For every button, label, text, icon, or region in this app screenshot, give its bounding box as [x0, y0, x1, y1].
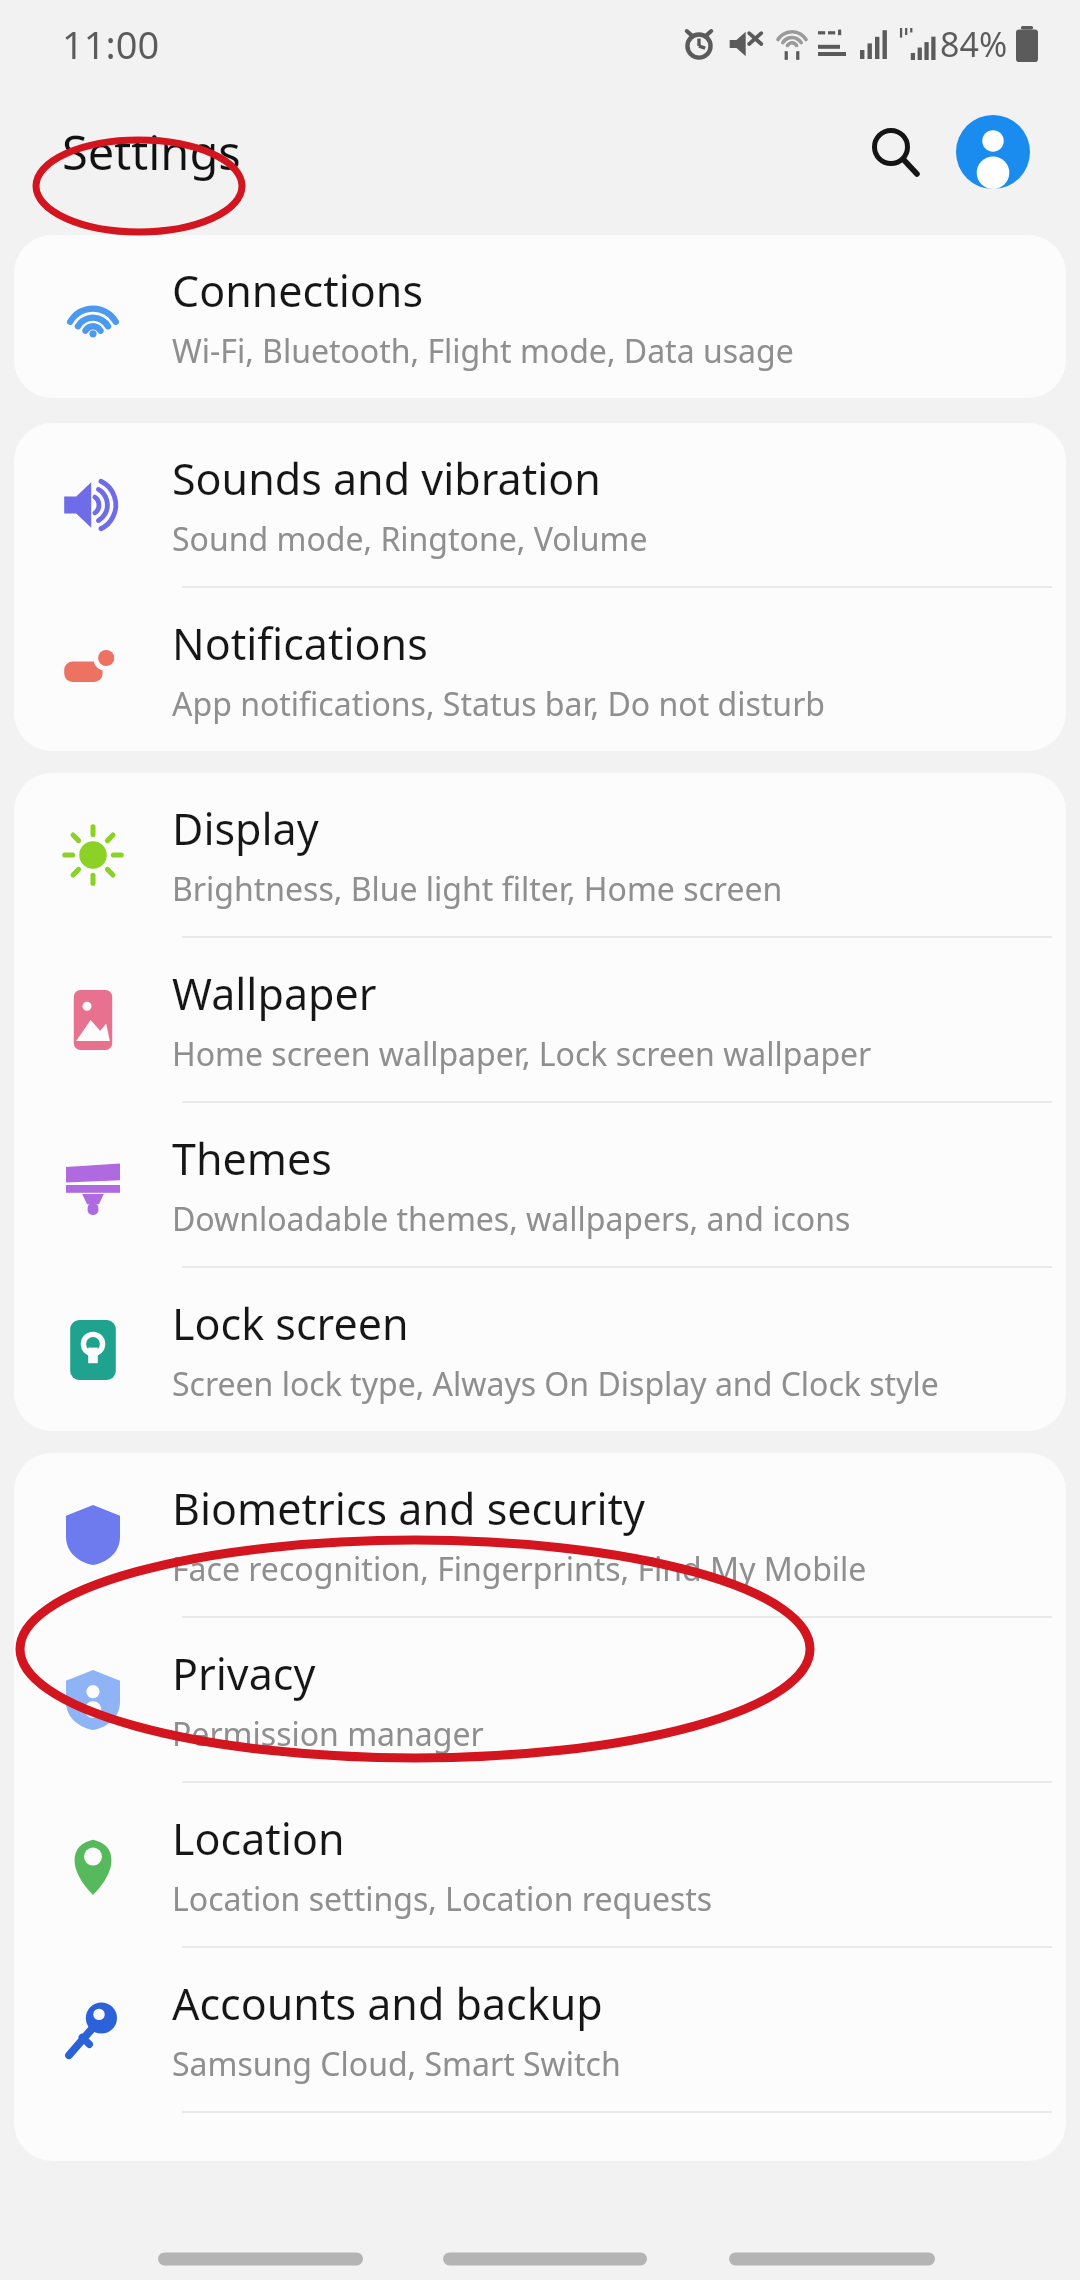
staticText: Sound mode, Ringtone, Volume	[172, 517, 648, 561]
button[interactable]: Accounts and backup	[14, 1948, 1066, 2111]
staticText: Privacy	[172, 1644, 316, 1703]
button[interactable]: Lock screen	[14, 1268, 1066, 1431]
staticText: Wi-Fi, Bluetooth, Flight mode, Data usag…	[172, 329, 794, 373]
staticText: Downloadable themes, wallpapers, and ico…	[172, 1197, 851, 1241]
staticText: Lock screen	[172, 1294, 409, 1353]
staticText: Permission manager	[172, 1712, 484, 1756]
staticText: Notifications	[172, 614, 428, 673]
staticText: Samsung Cloud, Smart Switch	[172, 2042, 621, 2086]
staticText: Display	[172, 799, 319, 858]
staticText: Screen lock type, Always On Display and …	[172, 1362, 939, 1406]
button[interactable]: Account	[950, 109, 1036, 195]
staticText: Connections	[172, 261, 424, 320]
staticText: App notifications, Status bar, Do not di…	[172, 682, 826, 726]
staticText: Brightness, Blue light filter, Home scre…	[172, 867, 783, 911]
button[interactable]: Themes	[14, 1103, 1066, 1266]
button[interactable]: Display	[14, 773, 1066, 936]
staticText: Accounts and backup	[172, 1974, 603, 2033]
button[interactable]: Location	[14, 1783, 1066, 1946]
button[interactable]: Wallpaper	[14, 938, 1066, 1101]
staticText: Face recognition, Fingerprints, Find My …	[172, 1547, 867, 1591]
button[interactable]: Connections	[14, 235, 1066, 398]
button[interactable]: Search	[852, 109, 938, 195]
staticText: 84%	[940, 21, 1008, 67]
staticText: Wallpaper	[172, 964, 377, 1023]
staticText: Biometrics and security	[172, 1479, 645, 1538]
button[interactable]: Settings	[62, 120, 241, 184]
staticText: Sounds and vibration	[172, 449, 601, 508]
button[interactable]: Biometrics and security	[14, 1453, 1066, 1616]
staticText: Themes	[172, 1129, 332, 1188]
staticText: Location settings, Location requests	[172, 1877, 713, 1921]
button[interactable]: Privacy	[14, 1618, 1066, 1781]
staticText: 11:00	[62, 18, 160, 70]
staticText: Location	[172, 1809, 345, 1868]
staticText: Home screen wallpaper, Lock screen wallp…	[172, 1032, 872, 1076]
button[interactable]: Sounds and vibration	[14, 423, 1066, 586]
button[interactable]: Notifications	[14, 588, 1066, 751]
